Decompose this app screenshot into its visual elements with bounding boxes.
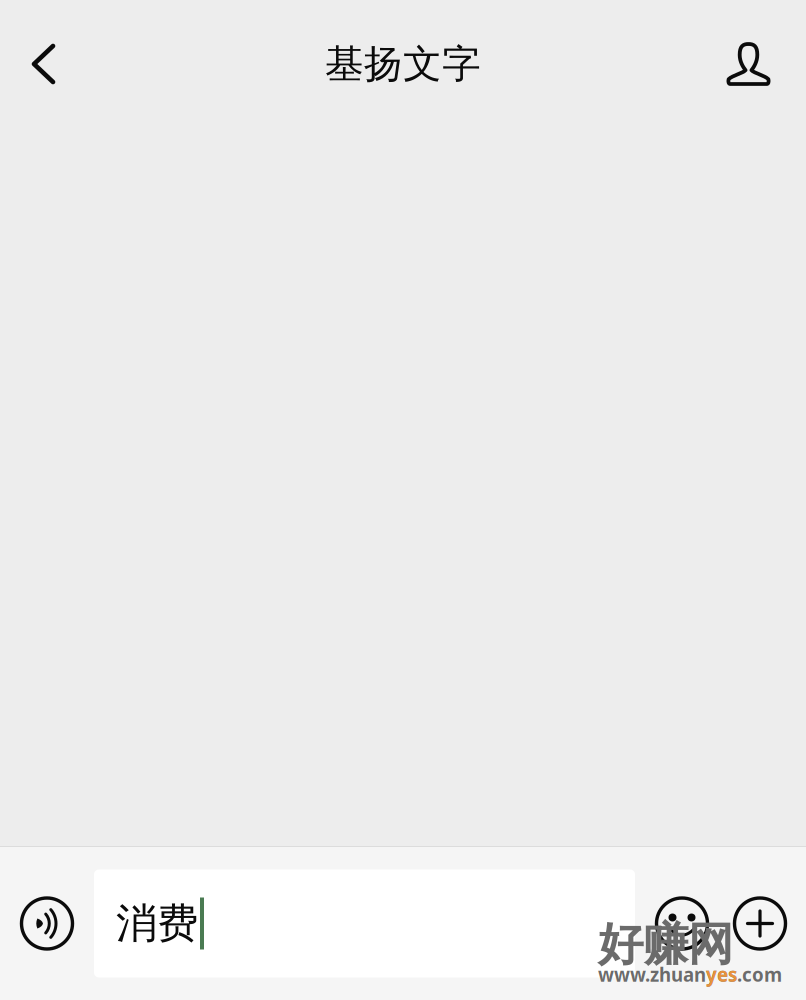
button[interactable]: Emoji [650, 859, 714, 987]
button[interactable]: Voice input [0, 859, 94, 987]
staticText: yes [706, 962, 737, 987]
staticText: 好赚网 [598, 916, 733, 972]
button[interactable]: More [714, 859, 806, 987]
button[interactable]: Contact info [702, 22, 806, 106]
staticText: www.zhuanyes.com [598, 962, 782, 987]
button[interactable]: Back [0, 22, 81, 106]
staticText: 基扬文字 [325, 40, 481, 88]
staticText: 消费 [116, 898, 198, 949]
